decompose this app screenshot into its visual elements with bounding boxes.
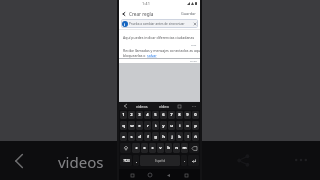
button[interactable]: t (152, 121, 159, 130)
staticText: , (136, 158, 137, 163)
staticText: Guardar (181, 11, 196, 16)
button[interactable]: salvar (147, 53, 157, 58)
button[interactable]: g (152, 132, 159, 141)
button[interactable]: y (160, 121, 167, 130)
button[interactable]: 6 (160, 111, 167, 119)
staticText: x (143, 145, 146, 151)
button[interactable]: Español (140, 155, 180, 166)
button[interactable]: 8 (176, 111, 183, 119)
button[interactable]: d (136, 132, 143, 141)
button[interactable]: Backspace (189, 143, 199, 153)
button[interactable]: q (120, 121, 127, 130)
button[interactable]: , (133, 155, 139, 166)
staticText: j (171, 134, 173, 140)
button[interactable]: Keyboard (128, 171, 136, 179)
button[interactable]: n (173, 143, 180, 153)
staticText: bloquearlas o (123, 53, 147, 58)
staticText: t (155, 123, 157, 129)
button[interactable]: f (144, 132, 151, 141)
button[interactable]: 3 (136, 111, 143, 119)
button[interactable]: w (128, 121, 135, 130)
button[interactable]: k (176, 132, 183, 141)
button[interactable]: More options (189, 102, 198, 110)
button[interactable]: . (181, 155, 187, 166)
button[interactable]: Recents (182, 171, 190, 179)
button[interactable]: Previous suggestion (121, 102, 129, 110)
staticText: 7 (170, 112, 173, 118)
button[interactable]: 4 (144, 111, 151, 119)
button[interactable]: s (128, 132, 135, 141)
button[interactable]: Back (119, 8, 129, 19)
staticText: 1 (122, 112, 125, 118)
button[interactable]: ?123 (120, 155, 132, 166)
button[interactable]: h (160, 132, 167, 141)
staticText: k (178, 134, 181, 140)
staticText: r (147, 123, 149, 129)
staticText: w (130, 123, 134, 129)
button[interactable]: Enter (188, 155, 199, 166)
button[interactable]: i (176, 121, 183, 130)
button[interactable]: i (121, 19, 198, 28)
staticText: ?123 (123, 159, 130, 163)
button[interactable]: Back (164, 171, 172, 179)
staticText: l (187, 134, 189, 140)
button[interactable]: l (184, 132, 191, 141)
button[interactable]: u (168, 121, 175, 130)
button[interactable]: 0 (192, 111, 199, 119)
button[interactable]: Close (192, 21, 197, 26)
button[interactable]: videos (131, 102, 152, 110)
button[interactable]: a (120, 132, 127, 141)
button[interactable]: Aquí puedes indicar diferencias ciudadan… (123, 35, 195, 40)
staticText: u (170, 123, 173, 129)
staticText: e (138, 123, 141, 129)
button[interactable]: v (157, 143, 164, 153)
button[interactable]: Recibe llamadas y mensajes conectados as… (123, 48, 202, 53)
staticText: videos (58, 152, 104, 172)
staticText: h (162, 134, 165, 140)
button[interactable]: ñ (192, 132, 199, 141)
button[interactable]: 1 (120, 111, 127, 119)
staticText: g (154, 134, 157, 140)
staticText: 0/40 (191, 43, 197, 46)
button[interactable]: e (136, 121, 143, 130)
button[interactable]: j (168, 132, 175, 141)
staticText: 5 (154, 112, 157, 118)
button[interactable]: Back (4, 146, 33, 175)
button[interactable]: m (181, 143, 188, 153)
staticText: a (122, 134, 125, 140)
button[interactable]: vídeo (153, 102, 174, 110)
staticText: m (182, 145, 187, 151)
staticText: Crear regla (129, 11, 154, 17)
button[interactable]: p (192, 121, 199, 130)
button[interactable]: Guardar (177, 9, 200, 18)
button[interactable]: Clipboard (175, 102, 184, 110)
button[interactable]: 2 (128, 111, 135, 119)
staticText: i (179, 123, 181, 129)
button[interactable]: b (165, 143, 172, 153)
button[interactable]: z (132, 143, 140, 153)
staticText: 6 (162, 112, 165, 118)
staticText: o (186, 123, 189, 129)
button[interactable]: Home (146, 171, 154, 179)
button[interactable]: x (141, 143, 148, 153)
staticText: vídeo (159, 104, 169, 109)
staticText: s (130, 134, 133, 140)
button[interactable]: 9 (184, 111, 191, 119)
staticText: Prueba a cambiar antes de sincronizar (129, 22, 185, 26)
staticText: 4 (146, 112, 149, 118)
staticText: f (147, 134, 149, 140)
staticText: i (124, 22, 126, 27)
button[interactable]: r (144, 121, 151, 130)
button[interactable]: 5 (152, 111, 159, 119)
button[interactable]: c (149, 143, 156, 153)
staticText: y (162, 123, 165, 129)
button[interactable]: Shift (120, 143, 131, 153)
button[interactable]: o (184, 121, 191, 130)
staticText: n (175, 145, 178, 151)
staticText: ñ (194, 134, 197, 140)
button[interactable]: 7 (168, 111, 175, 119)
staticText: . (184, 158, 185, 163)
staticText: b (167, 145, 170, 151)
